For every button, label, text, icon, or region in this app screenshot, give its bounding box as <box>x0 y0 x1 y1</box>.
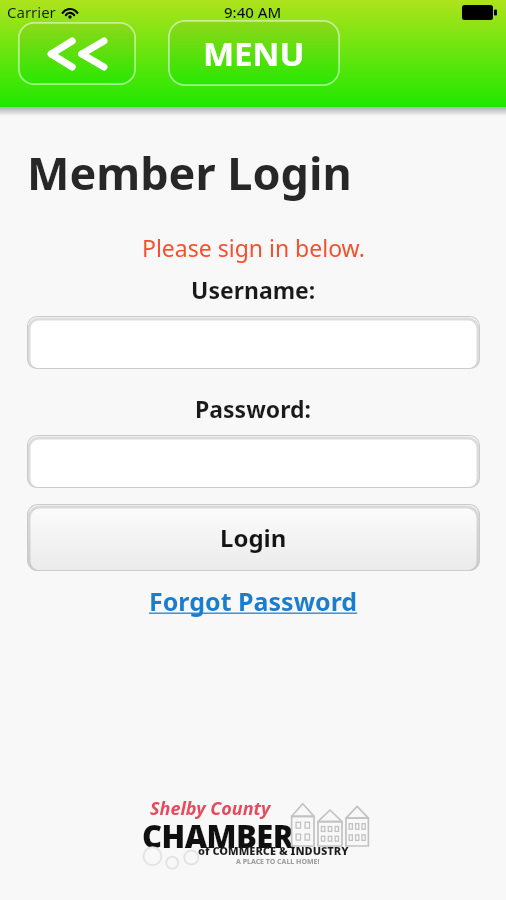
staticText: CHAMBER <box>142 815 294 857</box>
staticText: Shelby County <box>150 796 271 821</box>
button[interactable]: Text field <box>27 316 480 369</box>
staticText: Please sign in below. <box>142 232 365 263</box>
staticText: Carrier <box>7 2 56 22</box>
staticText: 9:40 AM <box>224 2 282 22</box>
staticText: Member Login <box>27 142 352 203</box>
button[interactable]: MENU <box>168 20 340 86</box>
staticText: A PLACE TO CALL HOME! <box>236 857 320 867</box>
staticText: Forgot Password <box>149 584 358 618</box>
staticText: Username: <box>191 274 316 305</box>
staticText: of COMMERCE & INDUSTRY <box>198 843 349 858</box>
staticText: MENU <box>203 31 305 76</box>
staticText: Password: <box>195 393 312 424</box>
button[interactable]: Login <box>27 504 480 571</box>
button[interactable]: Back <box>18 22 136 85</box>
button[interactable]: Text field <box>27 435 480 488</box>
staticText: Login <box>220 521 287 554</box>
button[interactable]: Forgot Password <box>143 580 364 622</box>
